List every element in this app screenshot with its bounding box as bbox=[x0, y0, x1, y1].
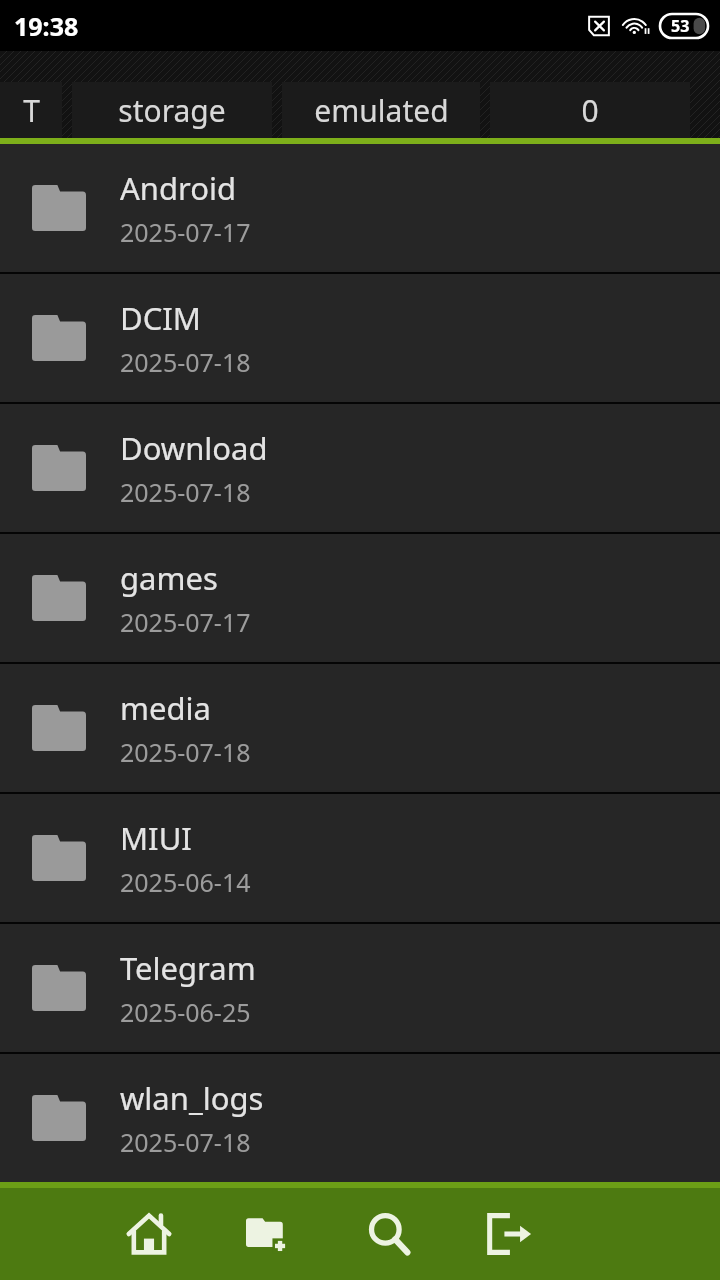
staticText: 2025-07-17 bbox=[120, 215, 251, 249]
button[interactable]: New folder bbox=[240, 1205, 298, 1263]
other: Battery 53 percent bbox=[660, 14, 708, 38]
staticText: 2025-07-18 bbox=[120, 735, 251, 769]
button[interactable]: games bbox=[0, 534, 720, 662]
staticText: 19:38 bbox=[14, 9, 79, 43]
staticText: media bbox=[120, 687, 211, 729]
button[interactable]: Android bbox=[0, 144, 720, 272]
button[interactable]: media bbox=[0, 664, 720, 792]
button[interactable]: Exit bbox=[480, 1205, 538, 1263]
button[interactable]: Search bbox=[360, 1205, 418, 1263]
button[interactable]: Telegram bbox=[0, 924, 720, 1052]
staticText: 2025-07-17 bbox=[120, 605, 251, 639]
staticText: storage bbox=[118, 90, 226, 131]
button[interactable]: emulated bbox=[282, 82, 480, 138]
other: No SIM bbox=[586, 15, 612, 37]
staticText: emulated bbox=[314, 90, 449, 131]
button[interactable]: DCIM bbox=[0, 274, 720, 402]
button[interactable]: Download bbox=[0, 404, 720, 532]
button[interactable]: Home bbox=[120, 1205, 178, 1263]
button[interactable]: MIUI bbox=[0, 794, 720, 922]
staticText: 0 bbox=[581, 90, 599, 131]
button[interactable]: T bbox=[0, 82, 62, 138]
staticText: games bbox=[120, 557, 218, 599]
staticText: Download bbox=[120, 427, 268, 469]
staticText: 2025-07-18 bbox=[120, 1125, 251, 1159]
staticText: Telegram bbox=[120, 947, 256, 989]
staticText: 2025-07-18 bbox=[120, 345, 251, 379]
staticText: MIUI bbox=[120, 817, 192, 859]
staticText: 53 bbox=[671, 15, 690, 37]
staticText: 2025-06-14 bbox=[120, 865, 251, 899]
staticText: wlan_logs bbox=[120, 1077, 264, 1119]
staticText: DCIM bbox=[120, 297, 201, 339]
staticText: 2025-07-18 bbox=[120, 475, 251, 509]
button[interactable]: 0 bbox=[490, 82, 690, 138]
staticText: Android bbox=[120, 167, 237, 209]
button[interactable]: storage bbox=[72, 82, 272, 138]
staticText: 2025-06-25 bbox=[120, 995, 251, 1029]
other: Wi-Fi bbox=[622, 15, 650, 37]
button[interactable]: wlan_logs bbox=[0, 1054, 720, 1182]
staticText: T bbox=[23, 90, 40, 131]
